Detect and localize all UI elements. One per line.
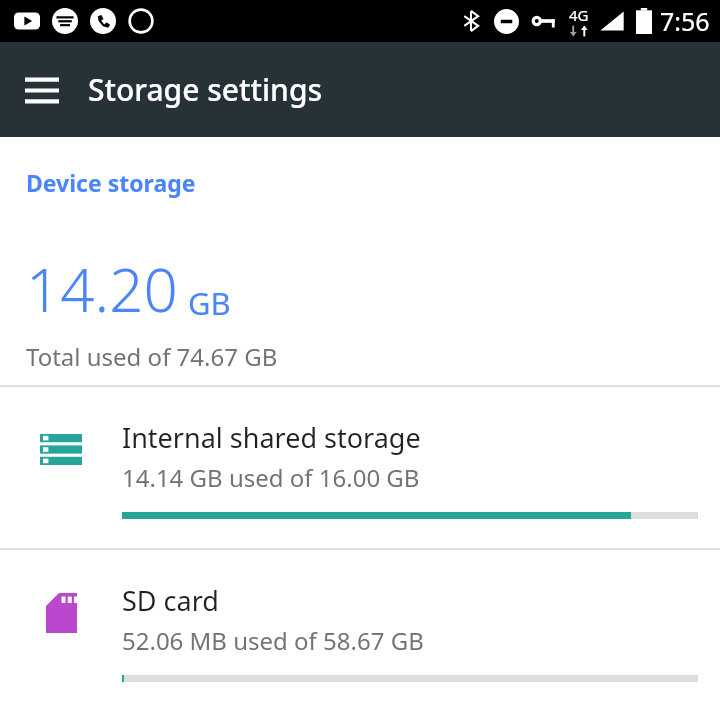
staticText: Total used of 74.67 GB [26,340,278,373]
staticText: Internal shared storage [122,419,421,456]
staticText: 14.14 GB used of 16.00 GB [122,461,420,494]
staticText: SD card [122,582,219,619]
staticText: 4G [569,5,589,25]
button[interactable]: Open navigation menu [14,62,70,118]
staticText: 7:56 [660,4,710,38]
staticText: Storage settings [88,69,323,110]
staticText: Device storage [26,167,196,198]
staticText: 14.20 [26,248,178,330]
staticText: GB [188,282,231,324]
button[interactable]: Internal shared storage [0,387,720,548]
staticText: 52.06 MB used of 58.67 GB [122,624,424,657]
button[interactable]: SD card [0,550,720,711]
